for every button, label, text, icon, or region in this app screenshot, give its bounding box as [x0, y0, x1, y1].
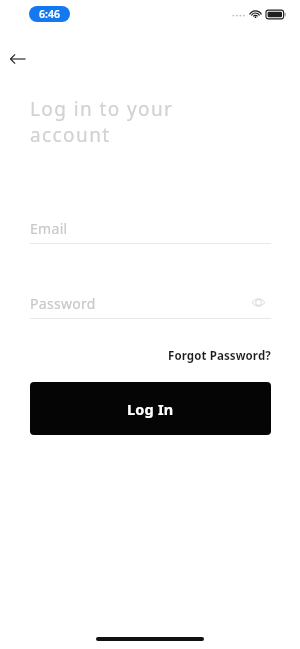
staticText: Log in to your account — [30, 96, 174, 148]
staticText: 6:46 — [39, 7, 60, 21]
staticText: Log In — [127, 399, 174, 419]
button[interactable]: Log In — [30, 382, 271, 435]
button[interactable]: Forgot Password? — [30, 345, 271, 367]
staticText: Password — [30, 294, 96, 313]
button[interactable]: Back — [4, 45, 32, 73]
staticText: Email — [30, 219, 68, 238]
button[interactable]: Email — [30, 212, 271, 244]
button[interactable]: Password — [30, 287, 271, 319]
button[interactable]: Show password — [245, 289, 271, 315]
staticText: Forgot Password? — [168, 348, 271, 364]
